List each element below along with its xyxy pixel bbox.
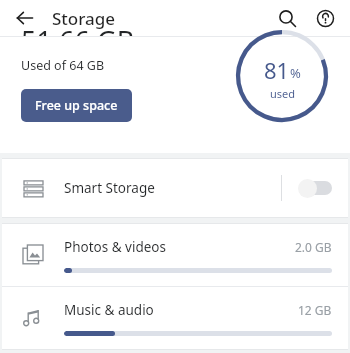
button[interactable]: Music & audio	[2, 287, 348, 349]
button[interactable]: Back	[8, 1, 42, 35]
button[interactable]: Search	[270, 1, 304, 35]
staticText: Photos & videos	[64, 238, 166, 256]
button[interactable]: Smart Storage toggle	[298, 178, 332, 198]
staticText: 2.0 GB	[295, 239, 332, 255]
button[interactable]: Smart Storage	[2, 159, 348, 217]
staticText: Smart Storage	[64, 179, 155, 197]
button[interactable]: Photos & videos	[2, 224, 348, 286]
button[interactable]: Free up space	[21, 89, 132, 122]
button[interactable]: Help	[308, 1, 342, 35]
staticText: Used of 64 GB	[21, 57, 105, 74]
staticText: Free up space	[35, 97, 118, 114]
staticText: Storage	[52, 7, 116, 30]
staticText: 12 GB	[298, 302, 332, 318]
staticText: %	[290, 64, 301, 82]
staticText: Music & audio	[64, 301, 154, 319]
staticText: used	[270, 86, 296, 101]
staticText: 51.66 GB	[21, 22, 135, 36]
staticText: 81	[264, 55, 290, 85]
